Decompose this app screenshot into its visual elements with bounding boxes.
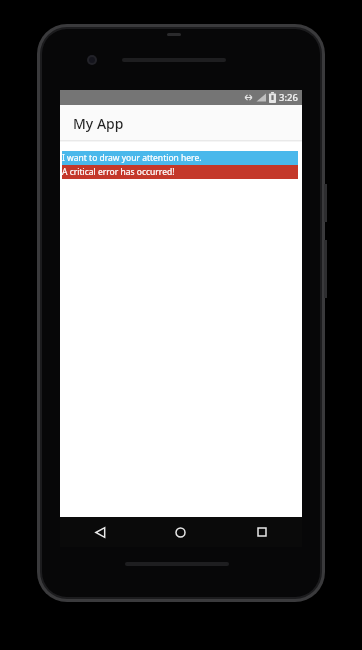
staticText: A critical error has occurred! xyxy=(62,166,175,178)
button[interactable]: Home xyxy=(140,517,221,547)
staticText: I want to draw your attention here. xyxy=(62,152,202,164)
button[interactable]: A critical error has occurred! xyxy=(62,165,298,179)
staticText: My App xyxy=(73,114,124,133)
button[interactable]: I want to draw your attention here. xyxy=(62,151,298,165)
button[interactable]: Recents xyxy=(221,517,302,547)
button[interactable]: Back xyxy=(60,517,140,547)
staticText: 3:26 xyxy=(279,91,298,104)
